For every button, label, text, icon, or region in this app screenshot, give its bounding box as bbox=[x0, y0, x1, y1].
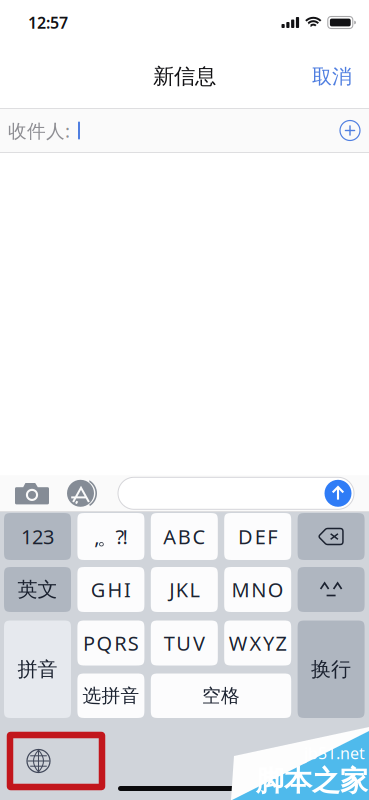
staticText: TUV bbox=[164, 630, 205, 656]
staticText: GHI bbox=[91, 576, 131, 603]
staticText: 换行 bbox=[311, 657, 351, 682]
button[interactable]: Emoticons bbox=[298, 567, 365, 612]
button[interactable]: Delete bbox=[298, 513, 365, 560]
staticText: ABC bbox=[163, 523, 205, 550]
button[interactable]: 拼音 bbox=[4, 620, 71, 718]
staticText: PQRS bbox=[83, 630, 139, 656]
button[interactable]: 空格 bbox=[151, 673, 291, 718]
staticText: 123 bbox=[21, 523, 54, 550]
button[interactable]: WXYZ bbox=[224, 620, 291, 665]
button[interactable]: 123 bbox=[4, 513, 71, 560]
button[interactable]: Apps bbox=[67, 478, 98, 508]
staticText: 收件人: bbox=[8, 118, 70, 143]
button[interactable]: 取消 bbox=[303, 55, 361, 98]
button[interactable]: PQRS bbox=[77, 620, 144, 665]
staticText: ,。?! bbox=[94, 523, 128, 550]
staticText: 新信息 bbox=[153, 63, 216, 90]
staticText: 选拼音 bbox=[82, 684, 139, 707]
staticText: 英文 bbox=[17, 577, 57, 602]
button[interactable]: Add contact bbox=[335, 115, 365, 145]
staticText: 空格 bbox=[202, 684, 240, 707]
button[interactable]: 英文 bbox=[4, 567, 71, 612]
button[interactable]: Switch keyboard bbox=[10, 735, 102, 787]
staticText: MNO bbox=[232, 576, 284, 603]
button[interactable]: Send bbox=[324, 480, 351, 507]
button[interactable]: ,。?! bbox=[77, 513, 144, 560]
button[interactable]: Camera bbox=[15, 482, 49, 505]
staticText: 12:57 bbox=[28, 12, 68, 33]
button[interactable]: TUV bbox=[151, 620, 218, 665]
button[interactable]: MNO bbox=[224, 567, 291, 612]
staticText: 取消 bbox=[312, 64, 352, 89]
staticText: JKL bbox=[169, 576, 199, 603]
button[interactable]: ABC bbox=[151, 513, 218, 560]
button[interactable]: 换行 bbox=[298, 620, 365, 718]
button[interactable]: 选拼音 bbox=[77, 673, 144, 718]
button[interactable]: JKL bbox=[151, 567, 218, 612]
button[interactable]: GHI bbox=[77, 567, 144, 612]
button[interactable]: DEF bbox=[224, 513, 291, 560]
staticText: WXYZ bbox=[229, 630, 287, 656]
staticText: 脚本之家 bbox=[256, 764, 368, 798]
staticText: jb51.net bbox=[304, 742, 365, 764]
staticText: 拼音 bbox=[17, 657, 57, 682]
staticText: DEF bbox=[238, 523, 277, 550]
